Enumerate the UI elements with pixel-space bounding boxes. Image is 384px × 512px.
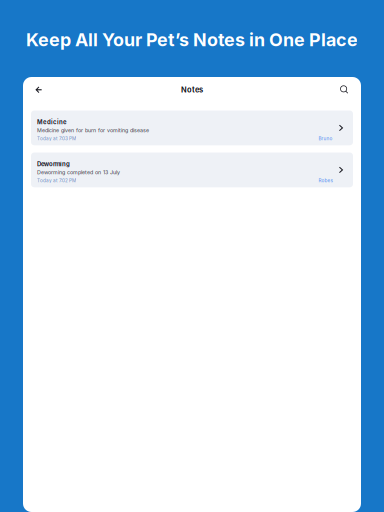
button[interactable]: Back <box>29 80 48 99</box>
button[interactable]: Search <box>335 80 354 99</box>
staticText: Bruno <box>319 136 333 141</box>
staticText: Notes <box>181 85 203 94</box>
staticText: Robes <box>319 178 333 183</box>
button[interactable]: Medicine <box>31 110 353 145</box>
staticText: Today at 7:03 PM <box>37 136 76 141</box>
staticText: Deworming completed on 13 July <box>37 169 120 176</box>
staticText: Medicine <box>37 118 67 126</box>
staticText: Keep All Your Pet’s Notes in One Place <box>26 29 358 51</box>
staticText: Today at 7:02 PM <box>37 178 76 183</box>
staticText: Medicine given for burn for vomiting dis… <box>37 127 149 134</box>
staticText: Deworming <box>37 160 70 168</box>
button[interactable]: Deworming <box>31 152 353 187</box>
